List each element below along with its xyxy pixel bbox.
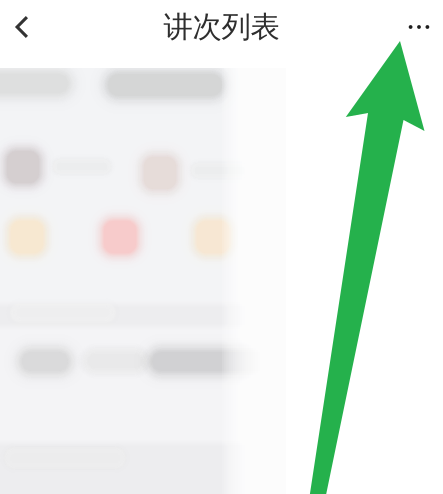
button[interactable]: Back bbox=[0, 0, 44, 54]
button[interactable]: More options bbox=[395, 0, 443, 54]
staticText: 讲次列表 bbox=[163, 9, 279, 45]
